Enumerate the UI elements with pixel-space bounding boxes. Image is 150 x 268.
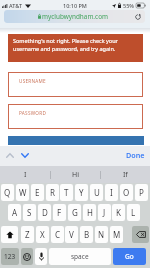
button[interactable]: Dictation (35, 248, 47, 265)
staticText: E (35, 187, 40, 198)
staticText: A (12, 207, 18, 218)
staticText: N (98, 229, 105, 240)
staticText: username and password, and try again. (13, 45, 116, 52)
button[interactable]: USERNAME (8, 72, 143, 97)
button[interactable]: 123 (1, 248, 19, 265)
button[interactable]: X (36, 226, 49, 243)
button[interactable]: N (95, 226, 108, 243)
staticText: J (103, 207, 106, 218)
button[interactable]: PASSWORD (8, 104, 143, 129)
button[interactable]: Done (126, 150, 145, 160)
staticText: T (64, 187, 69, 198)
button[interactable]: M (110, 226, 123, 243)
staticText: D (42, 207, 48, 218)
button[interactable]: space (49, 248, 111, 265)
button[interactable]: Z (21, 226, 34, 243)
staticText: Y (79, 187, 84, 198)
button[interactable]: Hi (51, 166, 100, 184)
staticText: S (27, 207, 32, 218)
staticText: M (113, 229, 121, 240)
staticText: V (69, 229, 74, 240)
staticText: 55% (123, 2, 134, 9)
staticText: P (139, 187, 144, 198)
staticText: Go (125, 252, 134, 261)
button[interactable]: I (105, 184, 118, 201)
staticText: U (94, 187, 100, 198)
staticText: H (87, 207, 93, 218)
staticText: C (55, 229, 61, 240)
button[interactable]: P (135, 184, 148, 201)
staticText: K (116, 207, 121, 218)
staticText: R (50, 187, 55, 198)
button[interactable]: Previous field (2, 149, 17, 162)
button[interactable]: myclubwyndham.com (4, 10, 145, 23)
staticText: If (123, 170, 128, 180)
staticText: Z (25, 229, 30, 240)
staticText: Hi (72, 170, 79, 180)
staticText: USERNAME (19, 78, 46, 84)
button[interactable]: Reload (134, 13, 142, 21)
staticText: Q (4, 187, 11, 198)
button[interactable]: Next field (17, 149, 32, 162)
button[interactable]: A (8, 204, 21, 221)
button[interactable]: O (120, 184, 133, 201)
button[interactable]: B (80, 226, 93, 243)
staticText: X (40, 229, 45, 240)
button[interactable]: I (0, 166, 50, 184)
button[interactable]: Backspace (132, 226, 149, 243)
button[interactable]: Y (75, 184, 88, 201)
button[interactable]: Emoji (21, 248, 33, 265)
staticText: space (71, 252, 89, 261)
staticText: L (131, 207, 136, 218)
staticText: G (72, 207, 78, 218)
staticText: AT&T (9, 2, 23, 9)
button[interactable]: U (90, 184, 103, 201)
button[interactable]: Go (113, 248, 146, 265)
button[interactable]: K (112, 204, 125, 221)
button[interactable]: H (83, 204, 96, 221)
button[interactable]: D (38, 204, 51, 221)
button[interactable]: W (16, 184, 29, 201)
staticText: Done (126, 150, 145, 160)
button[interactable]: If (101, 166, 150, 184)
staticText: 10:10 PM (63, 2, 87, 9)
button[interactable]: C (51, 226, 64, 243)
staticText: PASSWORD (19, 110, 47, 116)
staticText: I (110, 187, 113, 198)
button[interactable]: E (31, 184, 44, 201)
staticText: Something's not right. Please check your (13, 37, 118, 44)
button[interactable]: F (53, 204, 66, 221)
staticText: B (84, 229, 90, 240)
staticText: I (24, 170, 27, 180)
button[interactable]: Q (1, 184, 14, 201)
button[interactable]: L (127, 204, 140, 221)
staticText: O (123, 187, 130, 198)
button[interactable]: S (23, 204, 36, 221)
button[interactable]: J (98, 204, 111, 221)
staticText: myclubwyndham.com (42, 12, 108, 21)
button[interactable]: V (65, 226, 78, 243)
staticText: W (19, 187, 27, 198)
button[interactable]: R (46, 184, 59, 201)
button[interactable]: Shift (1, 226, 18, 243)
staticText: F (57, 207, 62, 218)
button[interactable]: T (60, 184, 73, 201)
staticText: 123 (4, 252, 16, 261)
button[interactable]: G (68, 204, 81, 221)
